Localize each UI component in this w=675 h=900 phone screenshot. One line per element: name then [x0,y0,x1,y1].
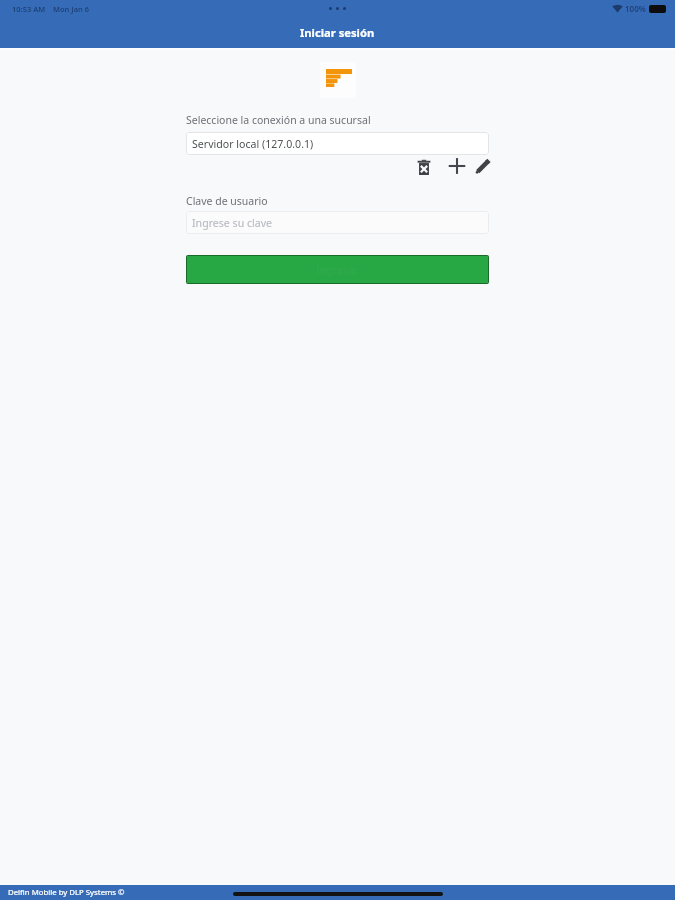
button[interactable]: Eliminar [414,156,434,176]
staticText: Iniciar sesión [300,25,375,40]
staticText: 10:53 AM [12,4,46,14]
button[interactable]: Ingrese su clave [186,211,489,234]
button[interactable]: Editar [472,156,492,176]
button[interactable]: Ingresar [186,255,489,284]
staticText: Seleccione la conexión a una sucursal [186,113,371,127]
button[interactable]: Servidor local (127.0.0.1) [186,132,489,155]
staticText: Mon Jan 6 [53,4,90,14]
button[interactable]: Agregar [447,156,467,176]
staticText: Servidor local (127.0.0.1) [192,137,314,151]
staticText: Clave de usuario [186,194,268,208]
staticText: 100% [625,3,646,14]
staticText: Ingrese su clave [192,216,273,230]
staticText: Delfin Mobile by DLP Systems © [8,887,125,898]
